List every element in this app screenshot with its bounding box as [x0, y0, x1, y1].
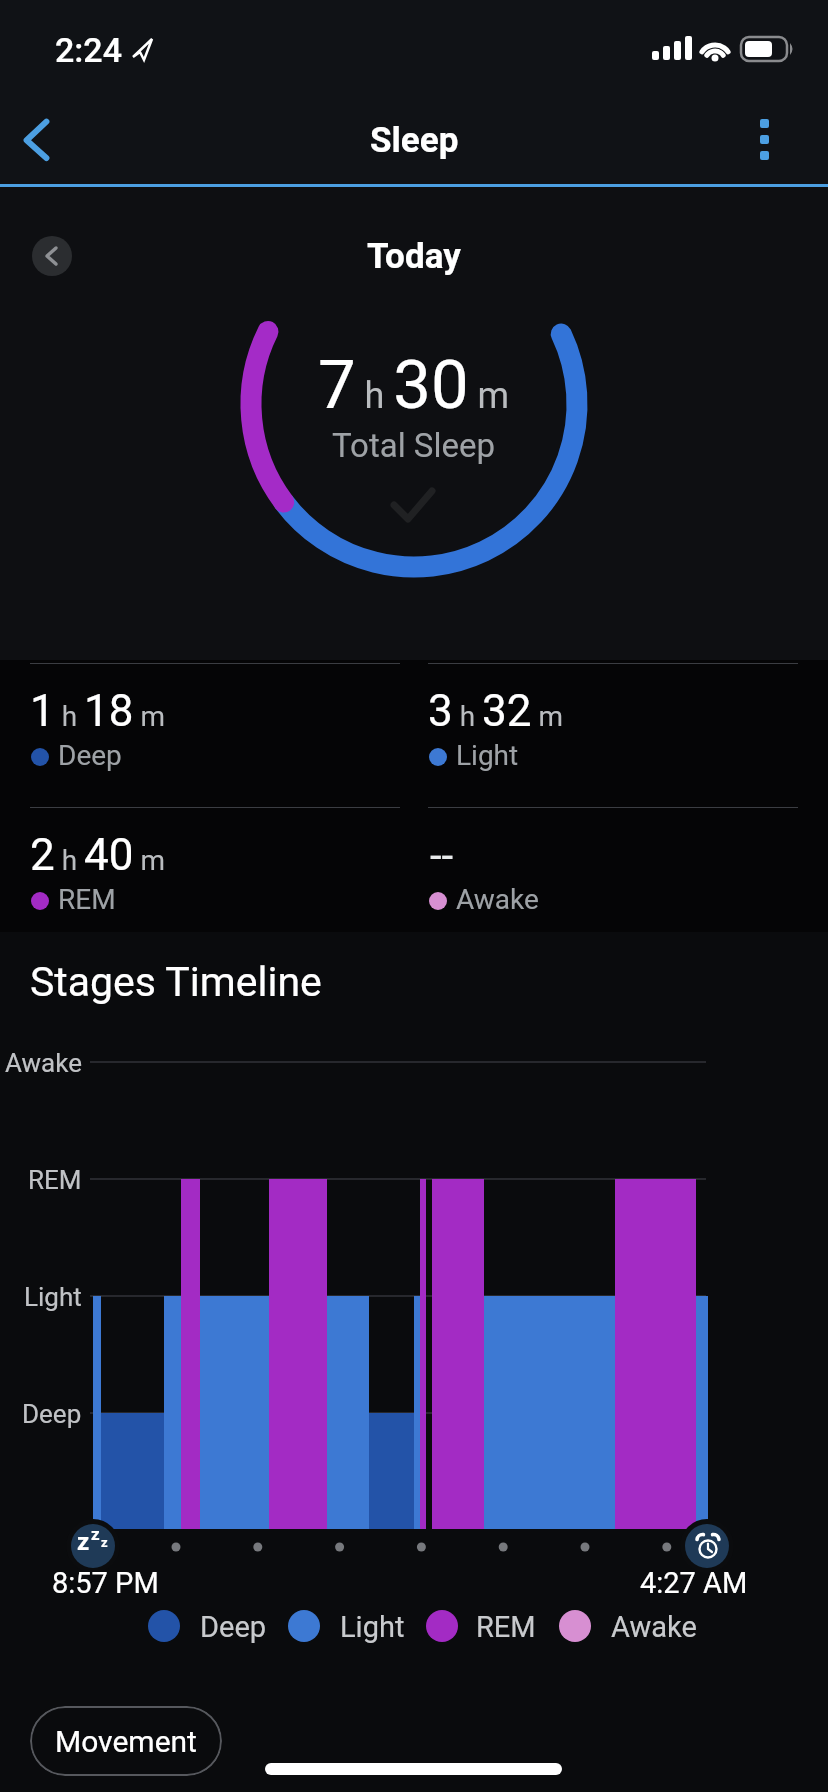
staticText: Stages Timeline: [30, 958, 322, 1006]
staticText: z: [77, 1528, 90, 1556]
staticText: Light: [24, 1282, 82, 1312]
staticText: Light: [340, 1610, 405, 1644]
staticText: Deep: [58, 739, 122, 772]
button[interactable]: [32, 236, 72, 276]
staticText: 2 h 40 m: [30, 829, 165, 881]
staticText: Total Sleep: [332, 426, 496, 465]
staticText: Deep: [200, 1610, 267, 1644]
staticText: 3 h 32 m: [428, 685, 563, 737]
staticText: Light: [456, 739, 519, 772]
staticText: Deep: [22, 1399, 82, 1429]
staticText: Today: [367, 236, 461, 277]
staticText: z: [91, 1524, 100, 1544]
staticText: REM: [476, 1610, 536, 1644]
staticText: Sleep: [370, 120, 459, 161]
staticText: 4:27 AM: [640, 1566, 748, 1600]
button[interactable]: [740, 104, 788, 174]
staticText: z: [101, 1535, 108, 1550]
staticText: 8:57 PM: [52, 1566, 159, 1600]
staticText: --: [430, 831, 454, 880]
staticText: 1 h 18 m: [30, 685, 165, 737]
staticText: 7 h 30 m: [318, 346, 510, 425]
staticText: Awake: [5, 1048, 82, 1078]
staticText: 2:24: [55, 30, 122, 70]
staticText: REM: [28, 1165, 82, 1195]
button[interactable]: [10, 108, 74, 172]
staticText: Movement: [55, 1724, 197, 1759]
staticText: REM: [58, 883, 116, 916]
staticText: Awake: [456, 883, 539, 916]
staticText: Awake: [611, 1610, 697, 1644]
button[interactable]: Movement: [30, 1706, 222, 1776]
